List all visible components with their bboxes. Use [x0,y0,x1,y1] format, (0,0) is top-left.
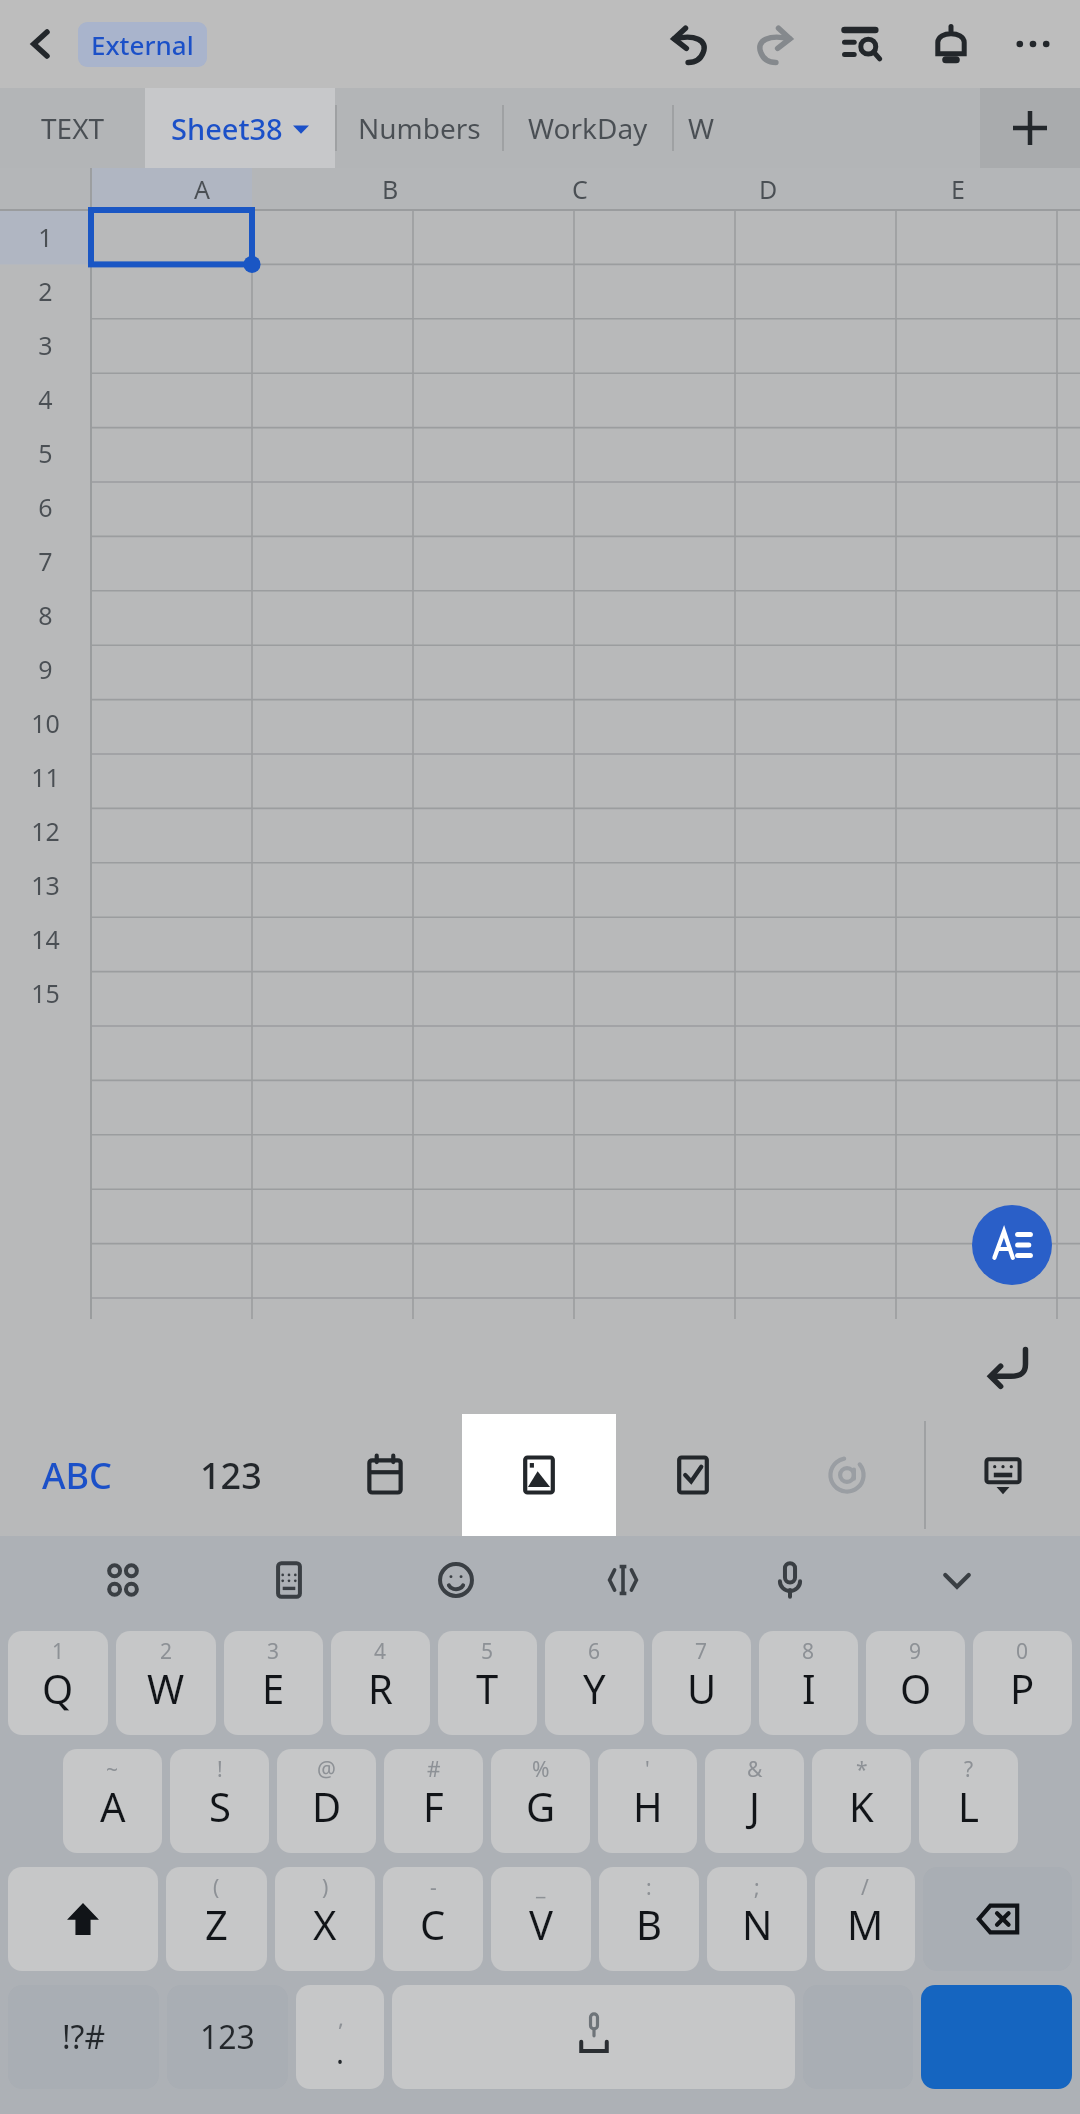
button[interactable]: ~ [63,1749,162,1853]
button[interactable]: 2 [116,1631,216,1735]
staticText: 1 [38,220,53,254]
staticText: 4 [38,382,53,416]
button[interactable]: D [674,168,863,210]
button[interactable]: 3 [0,318,91,372]
button[interactable]: 0 [973,1631,1072,1735]
staticText: ? [964,1755,974,1784]
button[interactable]: Mention [770,1414,924,1536]
staticText: # [427,1755,441,1784]
button[interactable]: External [78,22,207,67]
button[interactable]: 1 [8,1631,108,1735]
staticText: E [951,172,965,206]
button[interactable]: Find and replace [830,11,896,77]
button[interactable]: Keyboard [206,1536,372,1624]
button[interactable]: 6 [0,480,91,534]
button[interactable]: 3 [224,1631,323,1735]
button[interactable]: 11 [0,750,91,804]
button[interactable]: Hide keyboard [926,1414,1080,1536]
button[interactable]: !?# [8,1985,159,2089]
button[interactable]: W [674,88,980,168]
staticText: External [91,27,194,62]
button[interactable]: 13 [0,858,91,912]
button[interactable]: Format text [972,1205,1052,1285]
button[interactable]: Numbers [337,88,502,168]
button[interactable]: Emoji [372,1536,539,1624]
staticText: ~ [106,1755,119,1784]
button[interactable]: _ [491,1867,591,1971]
staticText: N [742,1897,773,1951]
button[interactable]: 4 [331,1631,430,1735]
button[interactable]: 8 [0,588,91,642]
button[interactable]: 2 [0,264,91,318]
button[interactable]: Text editing [539,1536,706,1624]
staticText: 11 [31,760,60,794]
button[interactable]: 14 [0,912,91,966]
staticText: A [194,172,210,206]
button[interactable]: - [383,1867,483,1971]
button[interactable]: 9 [0,642,91,696]
button[interactable]: Sheet38 [145,88,335,168]
button[interactable]: % [491,1749,590,1853]
button[interactable]: Date [308,1414,462,1536]
button[interactable]: Enter [921,1985,1072,2089]
button[interactable]: ) [275,1867,375,1971]
button[interactable]: Comma and period [296,1985,384,2089]
button[interactable]: & [705,1749,804,1853]
button[interactable]: Space [392,1985,795,2089]
button[interactable]: ! [170,1749,269,1853]
button[interactable]: @ [277,1749,376,1853]
button[interactable]: 5 [438,1631,537,1735]
button[interactable]: 9 [866,1631,965,1735]
button[interactable]: ; [707,1867,807,1971]
button[interactable]: More options [1000,11,1066,77]
button[interactable]: Checkbox [616,1414,770,1536]
button[interactable]: Add sheet [980,88,1080,168]
button[interactable]: 1 [0,210,91,264]
button[interactable]: 5 [0,426,91,480]
staticText: ! [217,1755,223,1784]
staticText: Z [205,1897,228,1951]
button[interactable]: : [599,1867,699,1971]
staticText: V [529,1897,553,1951]
button[interactable]: Undo [656,11,722,77]
button[interactable]: Shift [8,1867,158,1971]
button[interactable]: Image [462,1414,616,1536]
button[interactable]: Redo [742,11,808,77]
button[interactable]: 15 [0,966,91,1020]
button[interactable]: 123 [154,1414,308,1536]
button[interactable]: / [815,1867,915,1971]
button[interactable]: ' [598,1749,697,1853]
button[interactable]: Notifications [918,11,984,77]
button[interactable]: * [812,1749,911,1853]
staticText: 5 [481,1637,494,1666]
button[interactable]: ABC [0,1414,154,1536]
staticText: L [958,1779,979,1833]
button[interactable]: 123 [167,1985,288,2089]
button[interactable]: 7 [652,1631,751,1735]
staticText: W [147,1661,185,1715]
button[interactable]: 12 [0,804,91,858]
staticText: 123 [200,1451,262,1500]
button[interactable]: 10 [0,696,91,750]
button[interactable]: 8 [759,1631,858,1735]
staticText: O [900,1661,932,1715]
button[interactable]: A [107,168,296,210]
button[interactable]: Voice input [706,1536,873,1624]
button[interactable]: Backspace [923,1867,1072,1971]
button[interactable]: Enter [966,1325,1050,1409]
button[interactable]: # [384,1749,483,1853]
button[interactable]: TEXT [0,88,145,168]
staticText: D [312,1779,342,1833]
button[interactable]: WorkDay [504,88,672,168]
button[interactable]: Collapse [873,1536,1040,1624]
button[interactable]: ? [919,1749,1018,1853]
button[interactable]: 7 [0,534,91,588]
button[interactable]: B [296,168,485,210]
button[interactable]: 6 [545,1631,644,1735]
button[interactable]: C [485,168,674,210]
button[interactable]: 4 [0,372,91,426]
button[interactable]: ( [166,1867,267,1971]
button[interactable]: Apps [40,1536,206,1624]
button[interactable]: Back [10,13,72,75]
